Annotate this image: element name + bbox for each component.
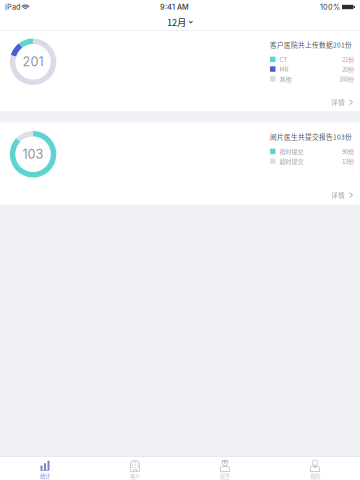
staticText: 160份 xyxy=(339,74,354,83)
staticText: 其他 xyxy=(279,74,291,83)
button[interactable]: 客户 xyxy=(90,457,180,480)
button[interactable]: 12月 xyxy=(163,13,197,31)
staticText: iPad xyxy=(5,3,20,11)
staticText: CT xyxy=(279,55,287,64)
staticText: 20份 xyxy=(342,65,354,73)
staticText: MR xyxy=(279,65,288,73)
staticText: 201 xyxy=(23,54,44,69)
staticText: 100% xyxy=(320,3,340,11)
staticText: 21份 xyxy=(342,55,354,64)
staticText: 阅片医生共提交报告103份 xyxy=(270,132,352,141)
button[interactable]: 详情 xyxy=(328,95,356,109)
staticText: 客户医院共上传数据201份 xyxy=(270,40,352,49)
staticText: 统计 xyxy=(40,472,50,480)
button[interactable]: 统计 xyxy=(0,457,90,480)
staticText: 医生 xyxy=(220,472,230,480)
staticText: 90份 xyxy=(342,147,354,156)
staticText: 按时提交 xyxy=(279,147,303,156)
staticText: 客户 xyxy=(130,472,140,480)
staticText: 详情 xyxy=(331,97,345,107)
button[interactable]: 我的 xyxy=(270,457,360,480)
button[interactable]: 医生 xyxy=(180,457,270,480)
staticText: 详情 xyxy=(331,190,345,200)
staticText: 13份 xyxy=(342,157,354,165)
staticText: 我的 xyxy=(310,472,320,480)
button[interactable]: 详情 xyxy=(328,188,356,202)
staticText: 12月 xyxy=(167,15,186,29)
staticText: 103 xyxy=(23,147,44,162)
staticText: 9:41 AM xyxy=(160,3,189,11)
staticText: 超时提交 xyxy=(279,157,303,165)
